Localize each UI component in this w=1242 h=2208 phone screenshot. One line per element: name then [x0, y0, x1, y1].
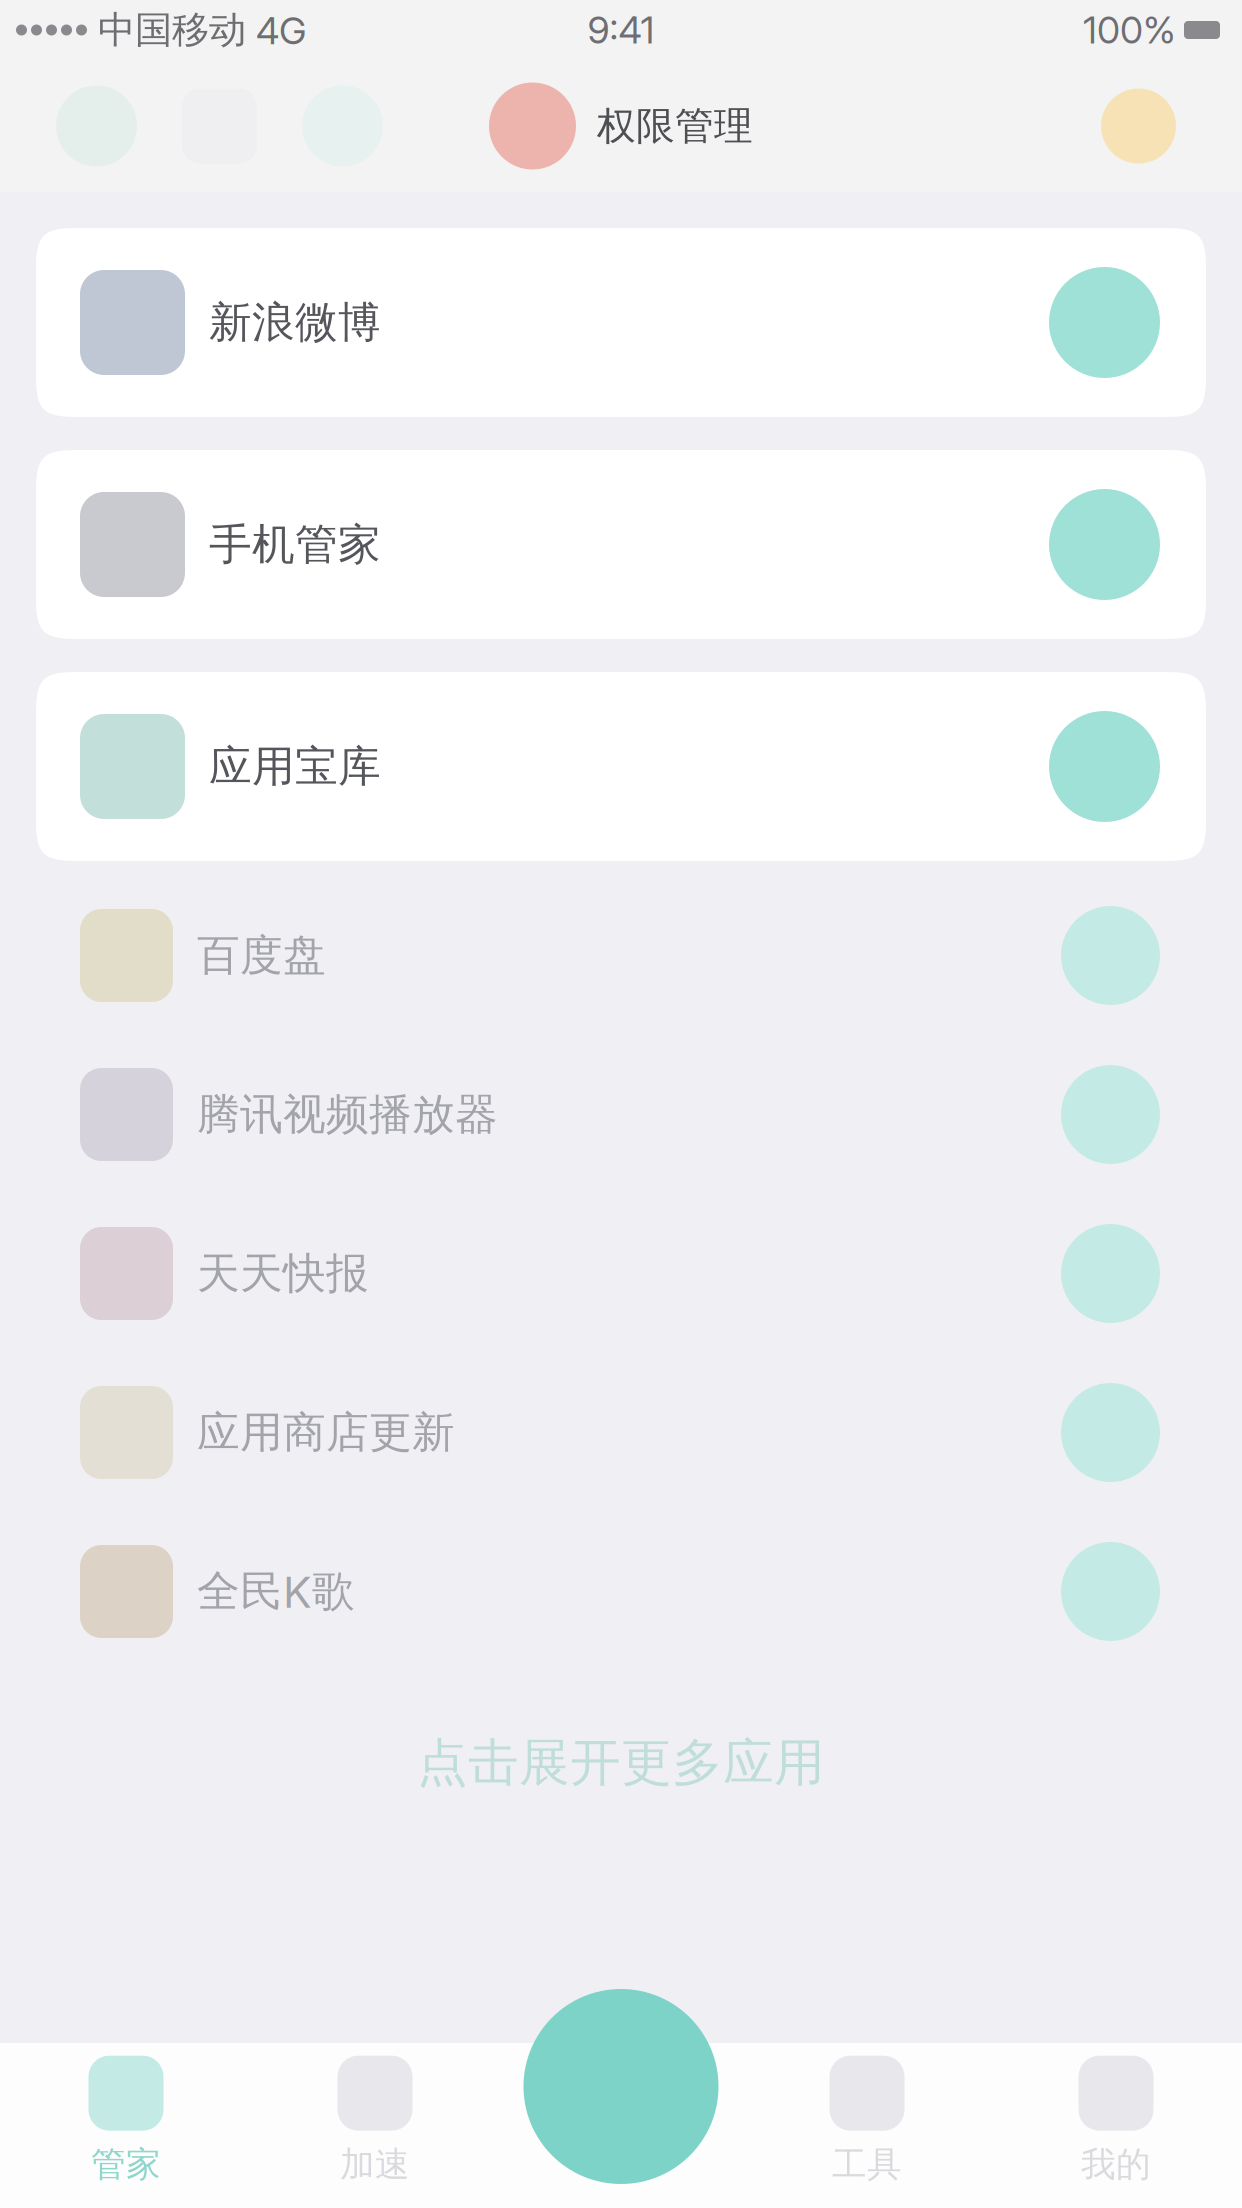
- staticText: 天天快报: [197, 1247, 369, 1300]
- button[interactable]: Search: [281, 60, 404, 192]
- staticText: 工具: [832, 2143, 902, 2186]
- staticText: 全民K歌: [197, 1565, 355, 1618]
- staticText: 管家: [91, 2143, 161, 2186]
- staticText: 腾讯视频播放器: [197, 1088, 498, 1141]
- button[interactable]: 工具: [747, 2043, 987, 2199]
- staticText: 应用宝库: [209, 740, 381, 793]
- staticText: 应用商店更新: [197, 1406, 455, 1459]
- staticText: 新浪微博: [209, 296, 381, 349]
- button[interactable]: 应用商店更新: [36, 1353, 1206, 1512]
- button[interactable]: Back: [0, 60, 158, 192]
- staticText: 100%: [1083, 7, 1176, 53]
- staticText: 我的: [1081, 2143, 1151, 2186]
- button[interactable]: Scan: [523, 1989, 718, 2184]
- staticText: 中国移动 4G: [87, 6, 306, 53]
- button[interactable]: 手机管家: [36, 450, 1206, 639]
- button[interactable]: 点击展开更多应用: [387, 1701, 855, 1825]
- button[interactable]: 我的: [996, 2043, 1236, 2199]
- button[interactable]: 天天快报: [36, 1194, 1206, 1353]
- button[interactable]: 管家: [6, 2043, 246, 2199]
- button[interactable]: 百度盘: [36, 876, 1206, 1035]
- button[interactable]: 腾讯视频播放器: [36, 1035, 1206, 1194]
- staticText: 手机管家: [209, 518, 381, 571]
- staticText: 9:41: [587, 7, 654, 53]
- button[interactable]: 应用宝库: [36, 672, 1206, 861]
- staticText: 百度盘: [197, 929, 326, 982]
- button[interactable]: 全民K歌: [36, 1512, 1206, 1671]
- button[interactable]: 新浪微博: [36, 228, 1206, 417]
- staticText: 权限管理: [597, 102, 753, 150]
- button[interactable]: 加速: [255, 2043, 495, 2199]
- button[interactable]: Help: [1065, 60, 1242, 192]
- staticText: 点击展开更多应用: [417, 1731, 825, 1795]
- staticText: 加速: [340, 2143, 410, 2186]
